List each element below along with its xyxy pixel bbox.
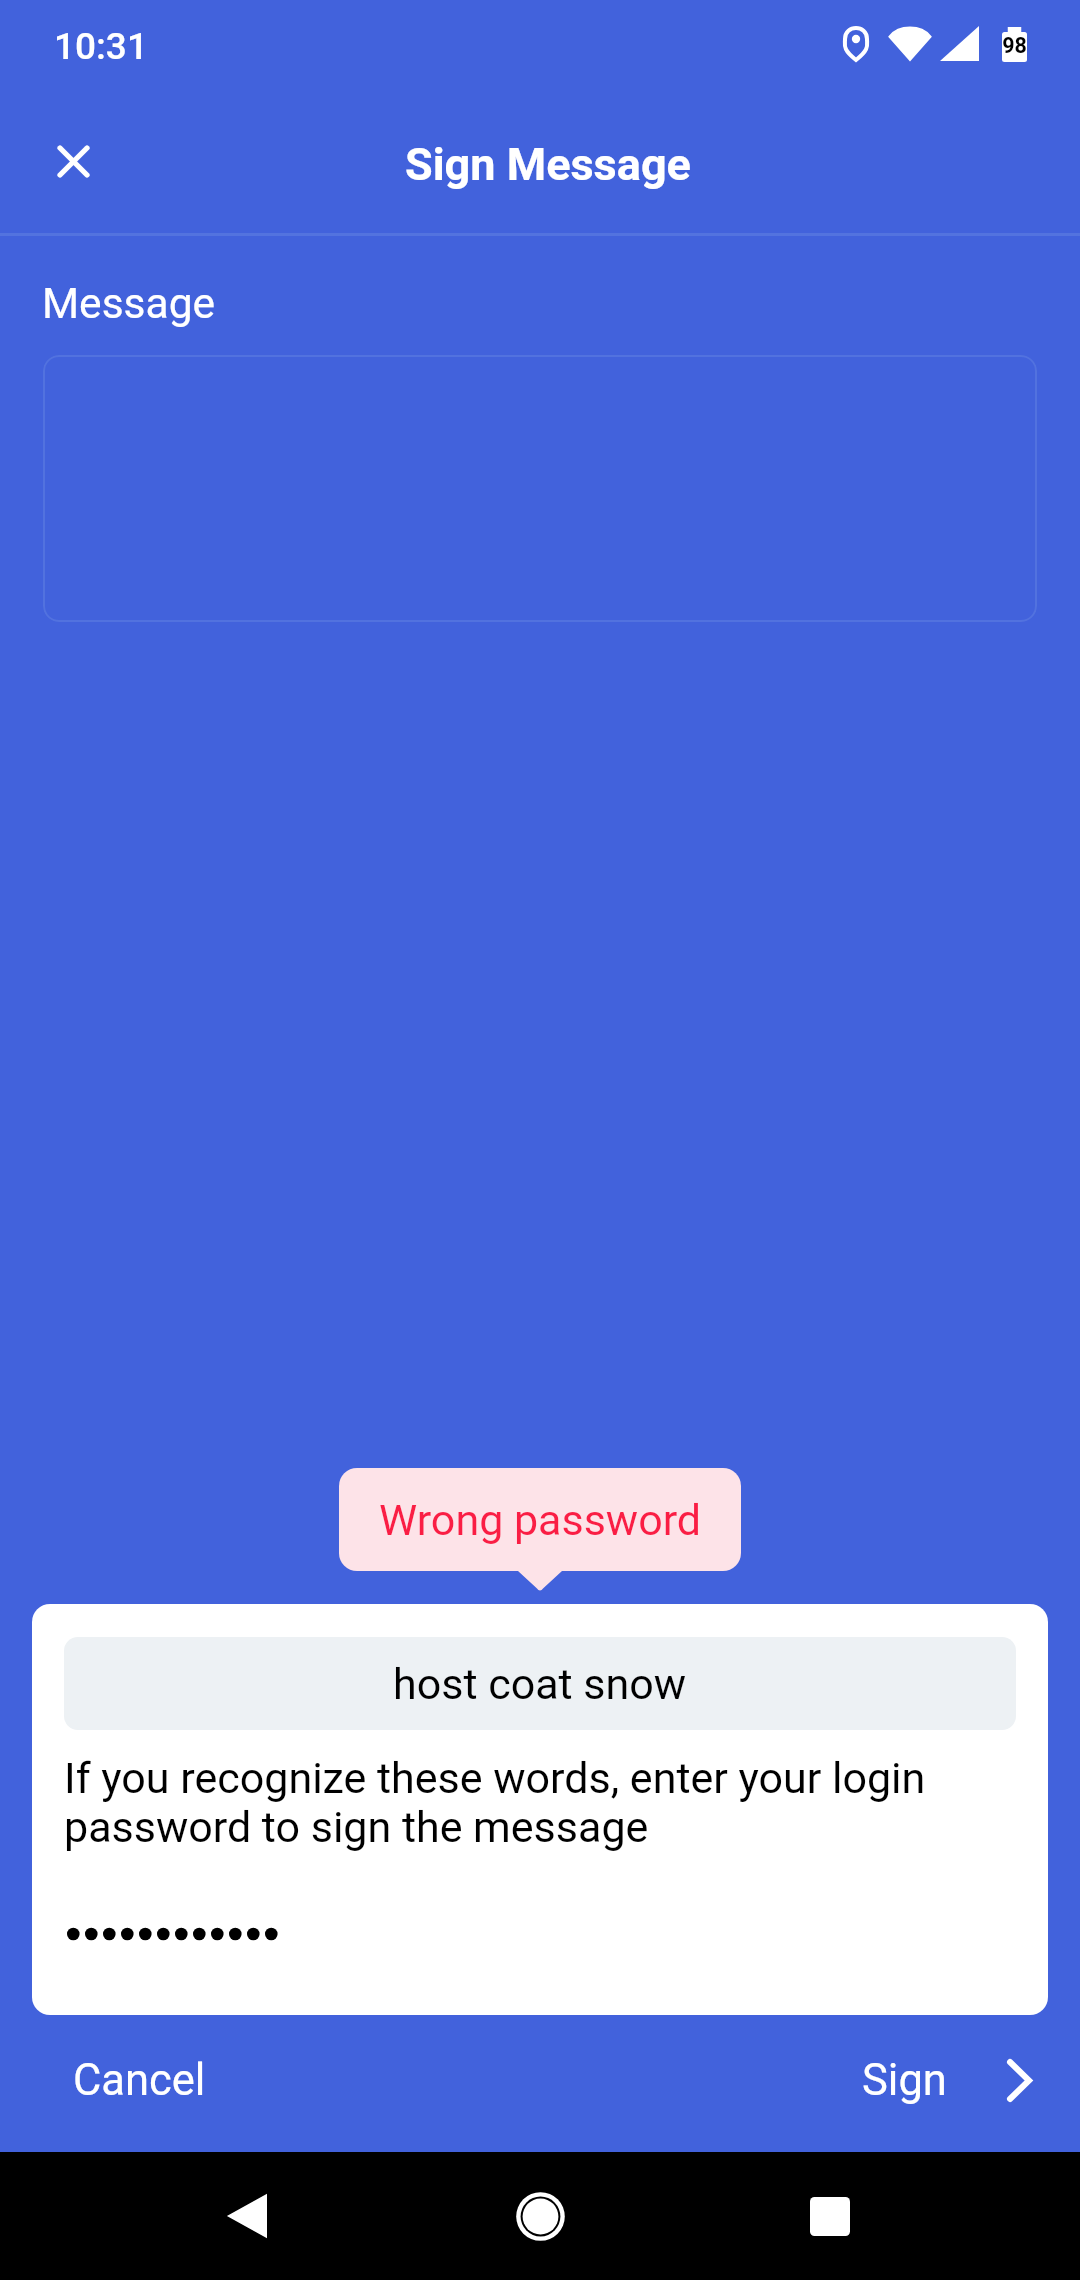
button[interactable]: Home — [490, 2166, 590, 2266]
button[interactable]: Back — [198, 2166, 298, 2266]
staticText: 10:31 — [54, 25, 148, 68]
button[interactable]: Password field — [32, 1927, 1048, 1941]
staticText: 98 — [1002, 33, 1027, 58]
staticText: Cancel — [73, 2055, 206, 2106]
button[interactable]: Sign — [850, 2046, 1041, 2121]
staticText: If you recognize these words, enter your… — [64, 1753, 1016, 1852]
button[interactable]: Cancel — [57, 2046, 222, 2121]
staticText: Wrong password — [379, 1495, 702, 1545]
staticText: host coat snow — [393, 1659, 687, 1709]
staticText: Message — [42, 279, 216, 329]
staticText: Sign — [862, 2055, 947, 2106]
button[interactable]: Close — [30, 118, 116, 204]
staticText: Sign Message — [405, 138, 691, 191]
button[interactable]: Recents — [780, 2166, 880, 2266]
button[interactable]: host coat snow — [64, 1637, 1016, 1730]
